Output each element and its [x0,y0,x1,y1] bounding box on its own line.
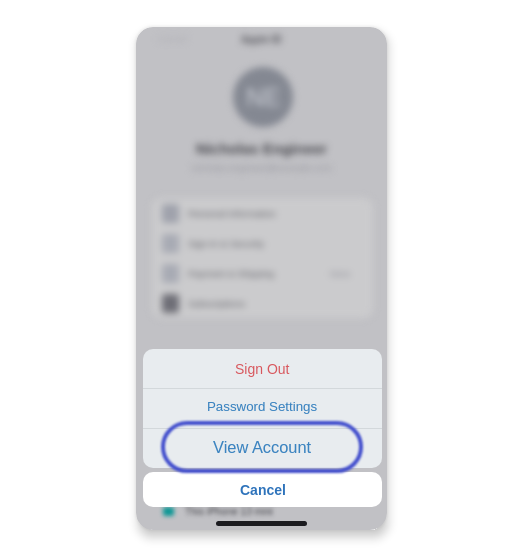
staticText: This iPhone 13 mini [185,506,273,517]
staticText: Sign Out [235,361,290,377]
staticText: Payment & Shipping [188,268,275,279]
button[interactable]: Sign-In & Security [162,228,373,258]
button[interactable]: Sign Out [143,349,382,388]
staticText: nicholas.engineer@example.com [136,162,387,173]
staticText: Password Settings [207,399,318,414]
button[interactable]: Subscriptions [162,288,373,318]
button[interactable]: Password Settings [143,389,382,428]
staticText: Nicholas Engineer [136,140,387,157]
other: View Account highlighted [154,414,370,480]
staticText: Cancel [240,482,286,498]
button[interactable]: View Account [143,429,382,468]
staticText: View Account [213,438,312,456]
button[interactable]: Cancel [143,472,382,507]
staticText: NE [246,83,281,111]
staticText: Subscriptions [188,298,246,309]
button[interactable]: Payment & Shipping [162,258,373,288]
staticText: Sign-In & Security [188,238,265,249]
staticText: Personal Information [188,208,276,219]
button[interactable]: Personal Information [162,198,373,228]
button[interactable]: NE [233,67,293,127]
staticText: Apple ID [241,34,282,45]
